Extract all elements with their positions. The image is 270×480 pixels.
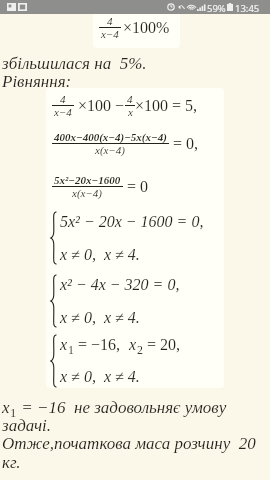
staticText: x [128, 106, 133, 118]
staticText: = −16 не задовольняє умову [17, 398, 227, 417]
staticText: 4 [107, 15, 113, 27]
staticText: ×100 = 5, [135, 97, 198, 115]
staticText: 1 [10, 406, 17, 420]
staticText: x ≠ 0, x ≠ 4. [60, 246, 140, 264]
staticText: 5x² − 20x − 1600 = 0, [60, 213, 204, 231]
staticText: ×100% [123, 19, 170, 37]
staticText: 400x−400(x−4)−5x(x−4) [54, 131, 167, 143]
staticText: = 20, [143, 336, 181, 354]
staticText: 4 [60, 93, 66, 105]
other: App notification [18, 3, 27, 11]
staticText: 1 [68, 343, 74, 356]
staticText: x−4 [54, 106, 72, 118]
staticText: збільшилася на 5%. [2, 54, 147, 73]
staticText: = 0 [123, 178, 149, 196]
staticText: x(x−4) [72, 187, 103, 199]
staticText: = 0, [169, 135, 199, 153]
staticText: x [2, 398, 10, 417]
staticText: x(x−4) [95, 144, 126, 156]
staticText: 59% [207, 2, 226, 15]
staticText: x [60, 336, 68, 354]
staticText: Отже,початкова маса розчину 20 [2, 434, 256, 453]
staticText: x [129, 336, 137, 354]
staticText: x² − 4x − 320 = 0, [60, 276, 180, 294]
other: Screenshot notification [7, 3, 16, 11]
staticText: ×100 − [74, 97, 125, 115]
staticText: 4 [127, 93, 133, 105]
staticText: Рівняння: [2, 72, 72, 91]
staticText: x−4 [101, 28, 119, 40]
staticText: 5x²−20x−1600 [54, 174, 121, 186]
staticText: x ≠ 0, x ≠ 4. [60, 368, 140, 386]
staticText: = −16, [74, 336, 129, 354]
staticText: 13:45 [235, 2, 260, 15]
staticText: 2 [137, 343, 143, 356]
staticText: x ≠ 0, x ≠ 4. [60, 309, 140, 327]
staticText: задачі. [2, 416, 52, 435]
staticText: кг. [2, 453, 21, 472]
